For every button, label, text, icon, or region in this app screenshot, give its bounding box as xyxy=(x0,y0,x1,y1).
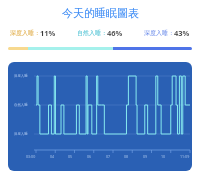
staticText: 03:00 xyxy=(26,154,36,159)
button[interactable]: 深度入睡： xyxy=(133,25,200,41)
staticText: 08 xyxy=(124,154,129,159)
staticText: 深度入睡： xyxy=(10,29,40,37)
staticText: 深度入睡： xyxy=(144,29,174,37)
staticText: 自然入睡： xyxy=(77,29,107,37)
staticText: 深度入睡 xyxy=(14,132,28,136)
staticText: 06 xyxy=(87,154,92,159)
staticText: 11% xyxy=(40,28,56,38)
staticText: 04 xyxy=(50,154,55,159)
button[interactable]: 深度入睡 xyxy=(8,62,192,171)
staticText: 43% xyxy=(174,28,190,38)
staticText: 09 xyxy=(143,154,148,159)
button[interactable]: 深度入睡： xyxy=(0,25,66,41)
staticText: 今天的睡眠圖表 xyxy=(62,6,139,20)
staticText: 07 xyxy=(106,154,111,159)
button[interactable]: 自然入睡： xyxy=(66,25,133,41)
staticText: 46% xyxy=(107,28,123,38)
staticText: 深度入睡 xyxy=(14,74,28,78)
staticText: 10 xyxy=(161,154,166,159)
staticText: 05 xyxy=(68,154,73,159)
staticText: 自然入睡 xyxy=(14,103,28,107)
staticText: 11:09 xyxy=(180,154,190,159)
